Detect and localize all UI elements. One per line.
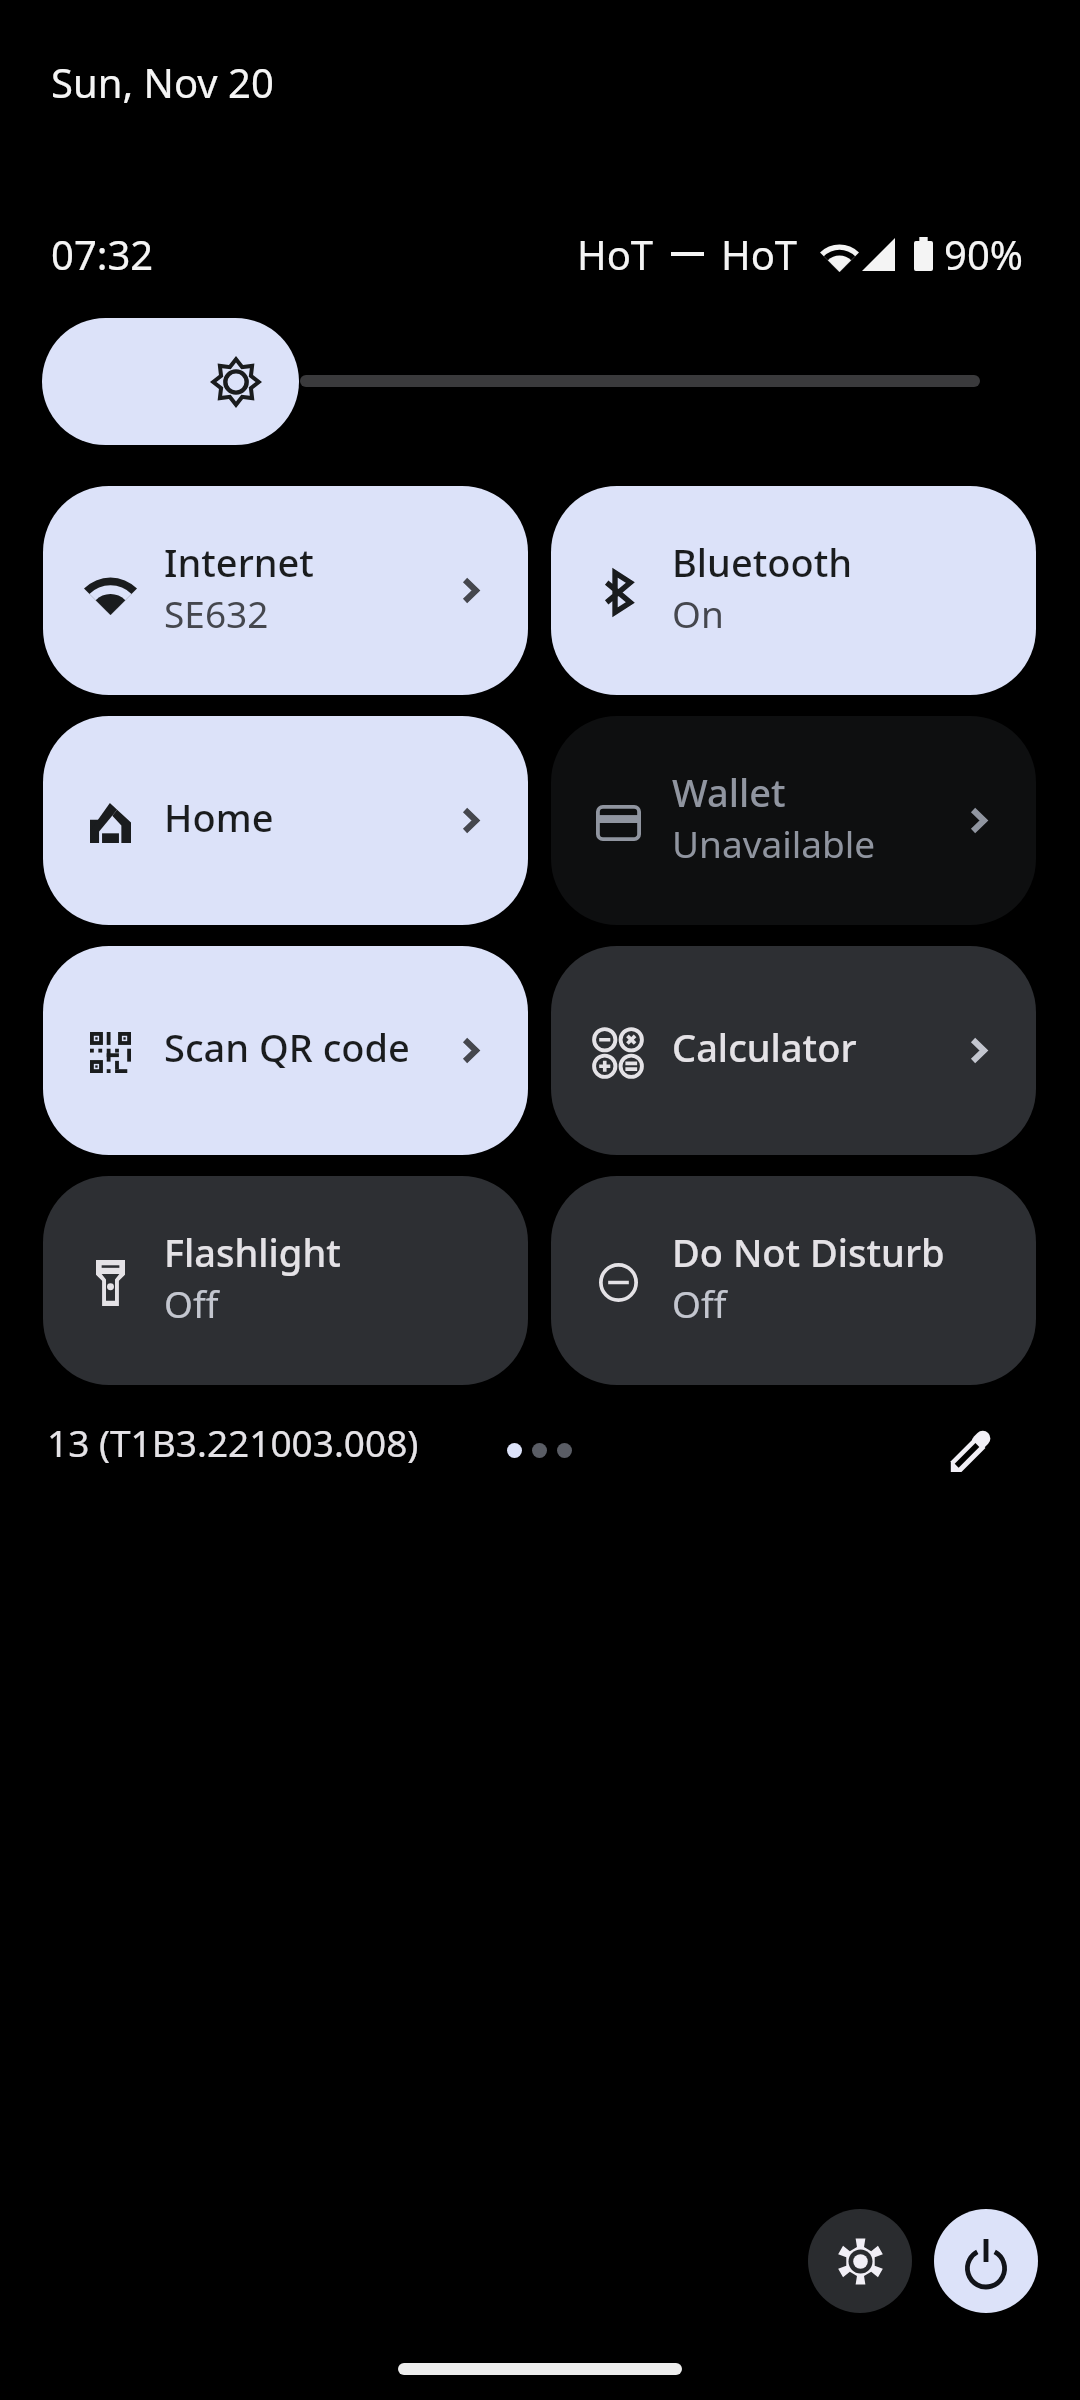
- staticText: 07:32: [51, 227, 154, 281]
- staticText: Scan QR code: [164, 1021, 410, 1073]
- staticText: Calculator: [672, 1021, 857, 1073]
- staticText: Sun, Nov 20: [51, 55, 274, 109]
- staticText: Bluetooth: [672, 536, 853, 588]
- staticText: On: [672, 588, 724, 638]
- button[interactable]: Do Not Disturb: [551, 1176, 1036, 1385]
- staticText: SE632: [164, 588, 269, 638]
- staticText: HoT: [721, 227, 798, 281]
- staticText: 90%: [944, 227, 1023, 281]
- button[interactable]: Bluetooth: [551, 486, 1036, 695]
- button[interactable]: Internet: [43, 486, 528, 695]
- staticText: Home: [164, 791, 274, 843]
- staticText: 13 (T1B3.221003.008): [47, 1417, 419, 1467]
- staticText: Unavailable: [672, 818, 876, 868]
- button[interactable]: Home: [43, 716, 528, 925]
- button[interactable]: Settings: [808, 2209, 912, 2313]
- staticText: Do Not Disturb: [672, 1226, 945, 1278]
- button[interactable]: Wallet: [551, 716, 1036, 925]
- button[interactable]: Power: [934, 2209, 1038, 2313]
- staticText: Flashlight: [164, 1226, 341, 1278]
- button[interactable]: Calculator: [551, 946, 1036, 1155]
- staticText: HoT: [577, 227, 654, 281]
- button[interactable]: Brightness: [42, 318, 299, 445]
- button[interactable]: Scan QR code: [43, 946, 528, 1155]
- button[interactable]: Edit tiles: [928, 1409, 1012, 1493]
- staticText: Off: [164, 1278, 219, 1328]
- staticText: Internet: [164, 536, 314, 588]
- button[interactable]: Flashlight: [43, 1176, 528, 1385]
- staticText: Off: [672, 1278, 727, 1328]
- staticText: Wallet: [672, 766, 786, 818]
